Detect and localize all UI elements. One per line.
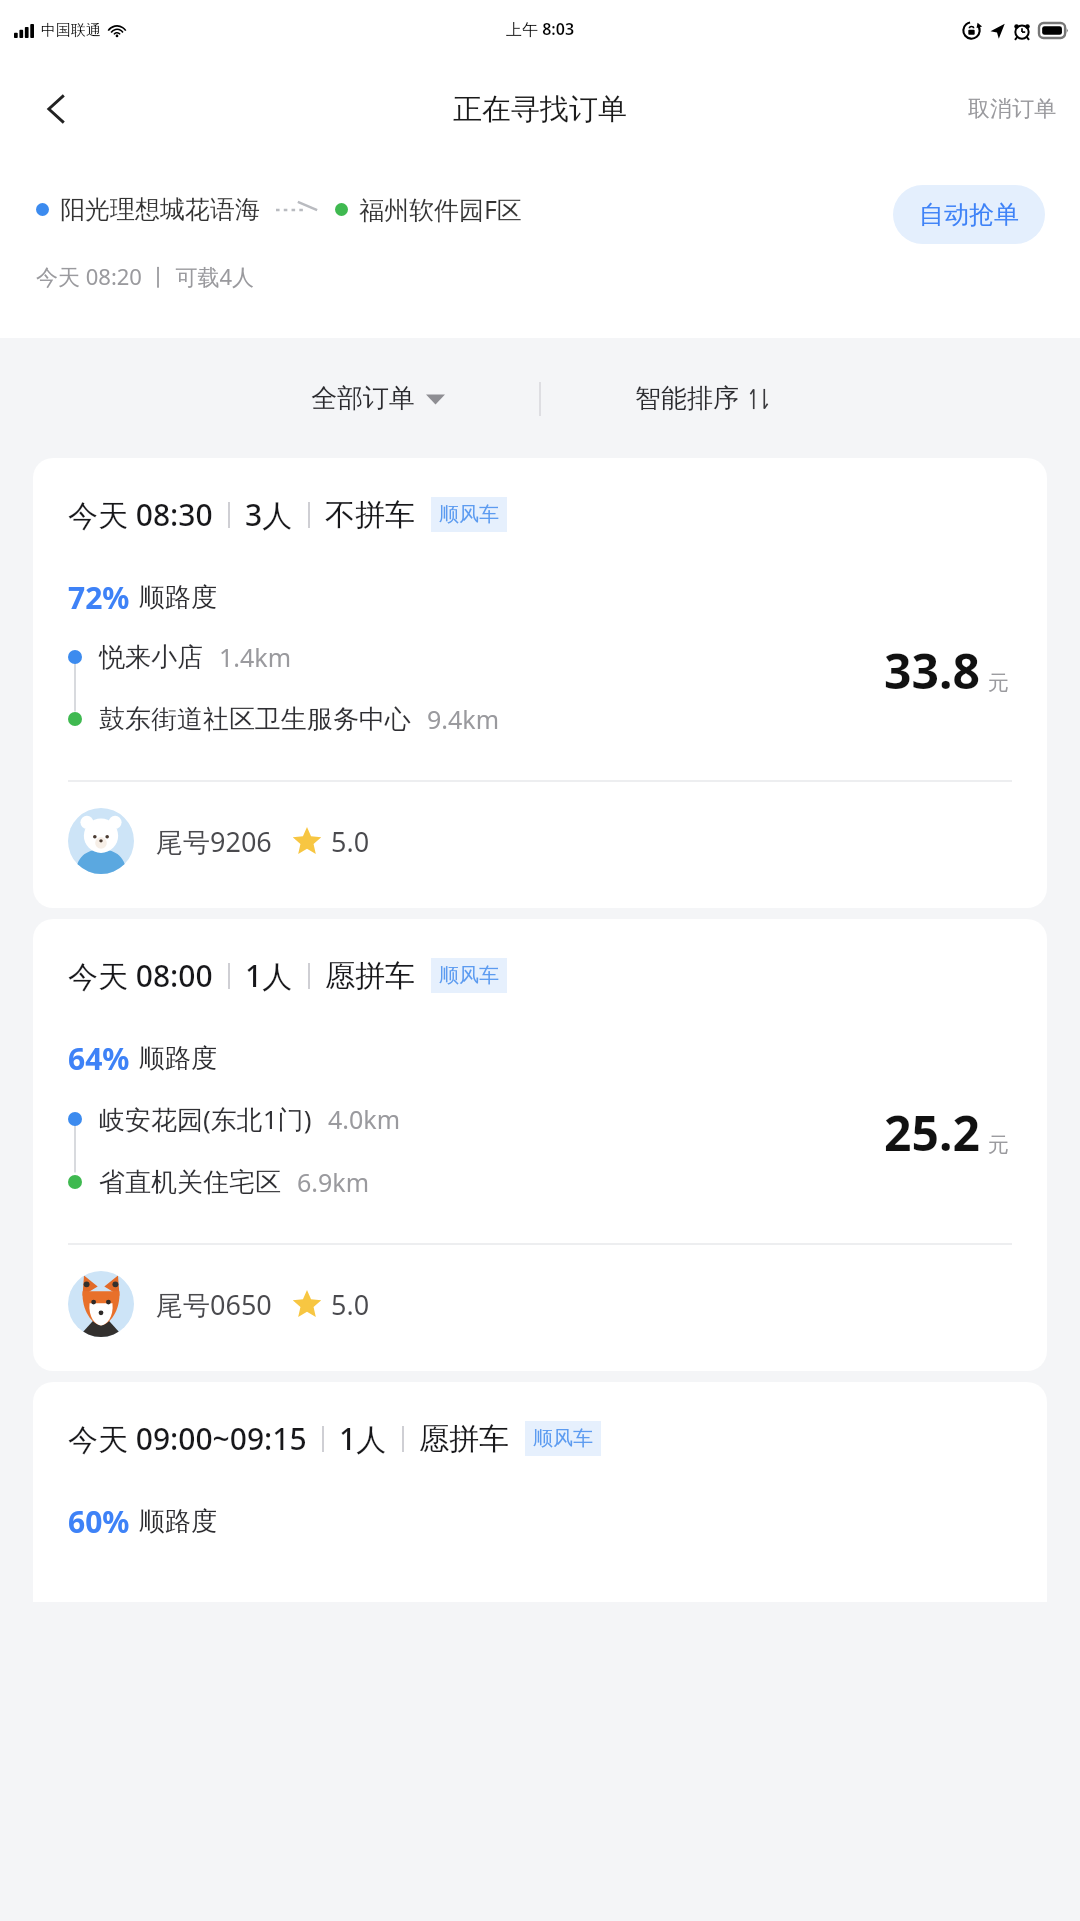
staticText: 全部订单 <box>311 382 415 415</box>
staticText: 中国联通 <box>41 21 101 40</box>
staticText: 顺路度 <box>139 1505 217 1538</box>
staticText: 鼓东街道社区卫生服务中心 <box>99 703 411 736</box>
staticText: 愿拼车 <box>419 1420 509 1458</box>
button[interactable]: 今天 08:00 <box>33 919 1047 1371</box>
staticText: 今天 08:20 丨 可载4人 <box>36 261 254 291</box>
staticText: 元 <box>988 670 1009 696</box>
staticText: 64% <box>68 1038 130 1079</box>
staticText: 3人 <box>245 494 293 535</box>
staticText: 5.0 <box>331 1286 370 1323</box>
staticText: 阳光理想城花语海 <box>60 194 260 225</box>
staticText: 正在寻找订单 <box>453 91 627 128</box>
staticText: 省直机关住宅区 <box>99 1166 281 1199</box>
button[interactable]: 今天 08:30 <box>33 458 1047 908</box>
staticText: 取消订单 <box>968 95 1056 123</box>
staticText: 福州软件园F区 <box>359 192 522 226</box>
staticText: 25.2 <box>884 1100 980 1165</box>
staticText: 6.9km <box>297 1165 370 1199</box>
staticText: 不拼车 <box>325 496 415 534</box>
staticText: 72% <box>68 577 130 618</box>
staticText: 元 <box>988 1132 1009 1158</box>
staticText: 4.0km <box>328 1102 401 1136</box>
button[interactable]: 全部订单 <box>301 374 455 423</box>
staticText: 顺风车 <box>439 502 499 527</box>
button[interactable]: 返回 <box>26 78 88 140</box>
staticText: 自动抢单 <box>919 199 1019 230</box>
staticText: 60% <box>68 1501 130 1542</box>
staticText: 尾号0650 <box>156 1286 272 1323</box>
staticText: 悦来小店 <box>99 641 203 674</box>
staticText: 9.4km <box>427 702 500 736</box>
staticText: 顺风车 <box>439 963 499 988</box>
staticText: 今天 08:00 <box>68 955 213 996</box>
button[interactable]: 取消订单 <box>944 83 1080 135</box>
staticText: 顺路度 <box>139 1042 217 1075</box>
button[interactable]: 智能排序 <box>625 374 780 423</box>
staticText: 顺风车 <box>533 1426 593 1451</box>
staticText: 顺路度 <box>139 581 217 614</box>
staticText: 今天 08:30 <box>68 494 213 535</box>
staticText: 岐安花园(东北1门) <box>99 1101 312 1137</box>
staticText: 1.4km <box>219 640 292 674</box>
staticText: 5.0 <box>331 823 370 860</box>
staticText: 智能排序 <box>635 382 739 415</box>
staticText: 今天 09:00~09:15 <box>68 1418 307 1459</box>
staticText: 上午 8:03 <box>506 18 575 40</box>
staticText: 愿拼车 <box>325 957 415 995</box>
button[interactable]: 今天 09:00~09:15 <box>33 1382 1047 1602</box>
button[interactable]: 自动抢单 <box>893 185 1045 244</box>
staticText: 33.8 <box>884 638 980 703</box>
staticText: 1人 <box>245 955 293 996</box>
staticText: 尾号9206 <box>156 823 272 860</box>
staticText: 1人 <box>339 1418 387 1459</box>
